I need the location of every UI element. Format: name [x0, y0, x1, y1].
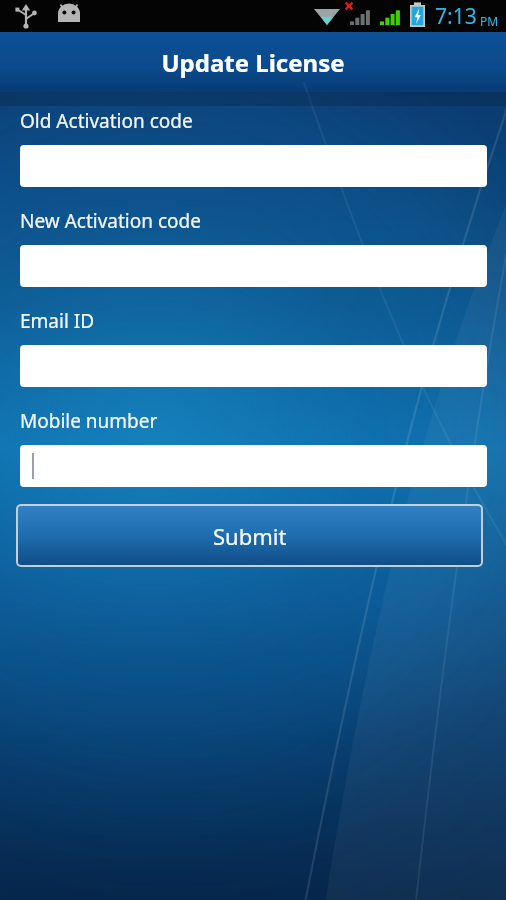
staticText: New Activation code — [20, 208, 201, 234]
staticText: Update License — [161, 46, 345, 79]
button[interactable]: Email ID — [20, 345, 487, 387]
staticText: Mobile number — [20, 408, 158, 434]
staticText: 7:13 — [435, 2, 477, 31]
staticText: Submit — [213, 521, 287, 551]
staticText: Old Activation code — [20, 108, 193, 134]
staticText: Email ID — [20, 308, 95, 334]
button[interactable]: Old Activation code — [20, 145, 487, 187]
staticText: PM — [480, 13, 499, 29]
button[interactable]: Submit — [18, 506, 481, 565]
button[interactable]: New Activation code — [20, 245, 487, 287]
button[interactable]: Mobile number — [20, 445, 487, 487]
